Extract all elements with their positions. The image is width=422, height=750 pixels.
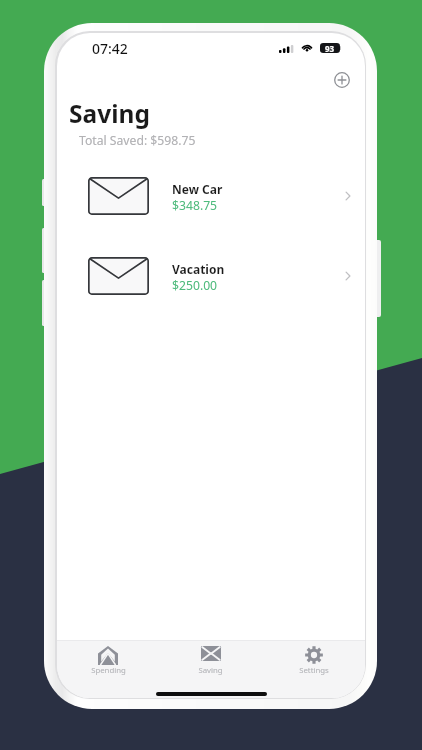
staticText: $348.75 [172, 197, 218, 214]
staticText: Spending [91, 665, 126, 676]
staticText: Total Saved: $598.75 [79, 132, 196, 149]
staticText: 07:42 [92, 39, 128, 58]
button[interactable]: Settings [262, 640, 365, 698]
staticText: 93 [325, 43, 335, 53]
button[interactable]: Vacation [57, 248, 365, 304]
staticText: Settings [299, 665, 329, 676]
staticText: Saving [198, 665, 223, 676]
button[interactable]: Add saving [328, 66, 356, 94]
staticText: $250.00 [172, 277, 218, 294]
button[interactable]: New Car [57, 168, 365, 224]
button[interactable]: Spending [57, 640, 159, 698]
button[interactable]: Saving [159, 640, 262, 698]
staticText: New Car [172, 181, 223, 197]
staticText: Vacation [172, 261, 225, 277]
staticText: Saving [69, 97, 150, 130]
